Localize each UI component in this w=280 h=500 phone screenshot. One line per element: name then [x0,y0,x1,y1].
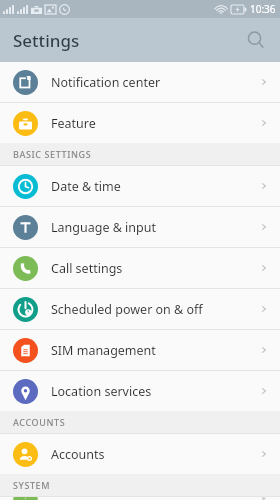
button[interactable]: Accounts [0,434,280,474]
staticText: BASIC SETTINGS [13,148,92,160]
staticText: Notification center [51,74,259,91]
staticText: 10:36 [250,2,276,16]
staticText: Settings [13,29,80,52]
staticText: SYSTEM [13,479,51,491]
button[interactable]: Language & input [0,207,280,247]
staticText: Language & input [51,219,259,236]
staticText: ACCOUNTS [13,416,66,428]
button[interactable]: SIM management [0,330,280,370]
button[interactable]: Scheduled power on & off [0,289,280,329]
staticText: SIM management [51,342,259,359]
staticText: Scheduled power on & off [51,301,259,318]
staticText: Date & time [51,178,259,195]
staticText: Feature [51,115,259,132]
staticText: Location services [51,383,259,400]
button[interactable]: About phone [0,497,280,500]
button[interactable]: Feature [0,103,280,143]
button[interactable]: Notification center [0,62,280,102]
button[interactable]: Search [238,22,274,58]
button[interactable]: Date & time [0,166,280,206]
button[interactable]: Call settings [0,248,280,288]
button[interactable]: Location services [0,371,280,411]
staticText: Call settings [51,260,259,277]
staticText: Accounts [51,446,259,463]
